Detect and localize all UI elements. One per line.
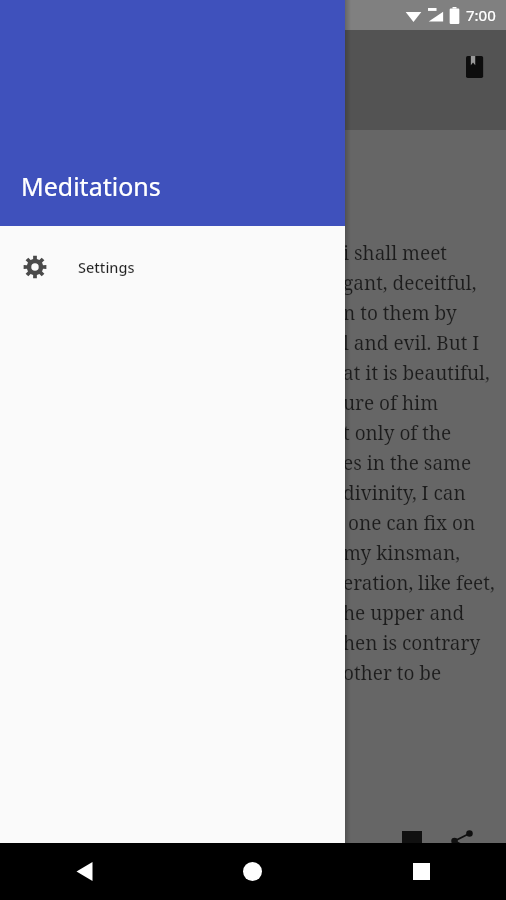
staticText: gant, deceitful, <box>343 270 477 296</box>
staticText: Settings <box>78 257 135 277</box>
staticText: eration, like feet, <box>343 570 495 596</box>
staticText: other to be <box>343 660 442 686</box>
staticText: divinity, I can <box>343 480 466 506</box>
staticText: t only of the <box>343 420 452 446</box>
staticText: es in the same <box>343 450 472 476</box>
staticText: he upper and <box>343 600 465 626</box>
staticText: ure of him <box>343 390 439 416</box>
staticText: my kinsman, <box>343 540 460 566</box>
button[interactable]: Home <box>168 843 337 900</box>
button[interactable]: Library <box>455 45 499 89</box>
staticText: 7:00 <box>466 5 496 25</box>
staticText: at it is beautiful, <box>343 360 490 386</box>
staticText: n to them by <box>343 300 457 326</box>
button[interactable]: Bookmark <box>388 817 436 865</box>
staticText: l and evil. But I <box>343 330 480 356</box>
staticText: hen is contrary <box>343 630 481 656</box>
staticText: one can fix on <box>343 510 476 536</box>
button[interactable]: Settings <box>0 239 345 295</box>
button[interactable]: Back <box>0 843 168 900</box>
staticText: Meditations <box>21 169 161 203</box>
button[interactable]: Share <box>438 817 486 865</box>
button[interactable]: Recent apps <box>337 843 506 900</box>
staticText: i shall meet <box>343 240 448 266</box>
